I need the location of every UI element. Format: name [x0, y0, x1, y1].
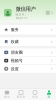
button[interactable]: 微信用户 — [0, 0, 56, 22]
button[interactable]: 微信 — [0, 89, 14, 100]
button[interactable]: 通讯录 — [14, 89, 28, 100]
staticText: 我 — [47, 95, 50, 99]
staticText: 发现 — [32, 95, 38, 99]
staticText: 服务 — [11, 27, 19, 32]
button[interactable]: 收藏 — [0, 37, 56, 46]
staticText: 微信 — [4, 95, 10, 99]
staticText: 视频号 — [11, 58, 23, 63]
button[interactable]: 视频号 — [0, 57, 56, 64]
staticText: 设置 — [11, 66, 19, 71]
button[interactable]: 发现 — [28, 89, 42, 100]
button[interactable]: 设置 — [0, 65, 56, 73]
staticText: 收藏 — [11, 39, 19, 44]
staticText: 朋友圈 — [11, 50, 23, 55]
button[interactable]: 我 — [42, 89, 56, 100]
staticText: 微信用户 — [16, 6, 36, 12]
button[interactable]: 朋友圈 — [0, 48, 56, 56]
staticText: 微信号：wx_8810 — [16, 13, 28, 20]
staticText: 通讯录 — [16, 95, 25, 99]
button[interactable]: 服务 — [0, 25, 56, 34]
